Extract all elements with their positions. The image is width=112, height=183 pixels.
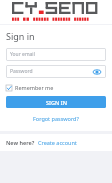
staticText: New here?	[6, 139, 35, 146]
staticText: Create account	[38, 139, 77, 146]
staticText: SIGN IN	[46, 99, 67, 106]
button[interactable]: Show password	[92, 67, 102, 77]
staticText: Password	[10, 68, 33, 75]
button[interactable]: Remember me	[6, 83, 54, 92]
staticText: Sign in	[6, 30, 35, 42]
button[interactable]: SIGN IN	[6, 96, 106, 108]
button[interactable]: Password	[6, 65, 106, 78]
staticText: Remember me	[15, 84, 54, 91]
staticText: Your email	[10, 51, 35, 58]
button[interactable]: New here?	[0, 134, 112, 151]
button[interactable]: Forgot password?	[31, 113, 81, 124]
button[interactable]: Your email	[6, 48, 106, 61]
